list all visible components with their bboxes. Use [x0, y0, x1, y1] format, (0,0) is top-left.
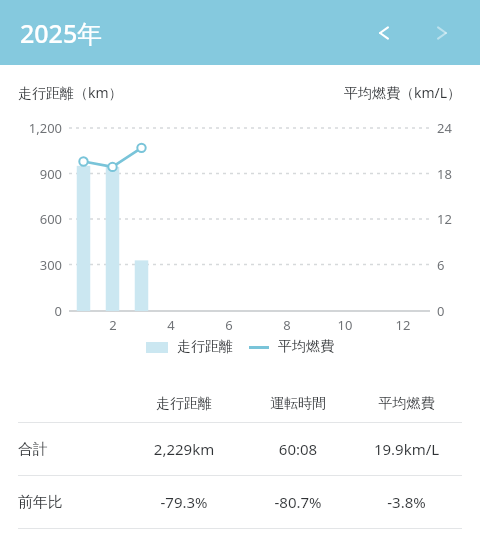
button[interactable]: 次の年 — [420, 11, 464, 55]
staticText: 60:08 — [245, 439, 351, 459]
staticText: -3.8% — [351, 492, 462, 512]
staticText: 6 — [437, 256, 469, 274]
staticText: 18 — [437, 165, 469, 183]
staticText: 合計 — [18, 440, 123, 459]
staticText: 2 — [100, 316, 126, 334]
staticText: 走行距離（km） — [18, 83, 123, 102]
staticText: 19.9km/L — [351, 439, 462, 459]
staticText: 平均燃費 — [351, 395, 462, 413]
staticText: 1,200 — [10, 119, 62, 137]
staticText: 平均燃費（km/L） — [344, 83, 462, 102]
staticText: 4 — [158, 316, 184, 334]
staticText: 走行距離 — [177, 338, 233, 356]
staticText: -79.3% — [123, 492, 245, 512]
staticText: 0 — [10, 302, 62, 320]
staticText: 0 — [437, 302, 469, 320]
staticText: 6 — [216, 316, 242, 334]
staticText: 10 — [332, 316, 358, 334]
staticText: 300 — [10, 256, 62, 274]
staticText: 走行距離 — [123, 395, 245, 413]
staticText: 2,229km — [123, 439, 245, 459]
staticText: 24 — [437, 119, 469, 137]
button[interactable]: 前の年 — [362, 11, 406, 55]
staticText: 前年比 — [18, 493, 123, 512]
staticText: 運転時間 — [245, 395, 351, 413]
staticText: 平均燃費 — [278, 338, 334, 356]
staticText: 8 — [274, 316, 300, 334]
staticText: 900 — [10, 165, 62, 183]
staticText: 600 — [10, 210, 62, 228]
staticText: 12 — [437, 210, 469, 228]
staticText: 2025年 — [20, 16, 103, 50]
staticText: -80.7% — [245, 492, 351, 512]
button[interactable]: 前年比 — [0, 476, 480, 528]
button[interactable]: 合計 — [0, 423, 480, 475]
staticText: 12 — [390, 316, 416, 334]
